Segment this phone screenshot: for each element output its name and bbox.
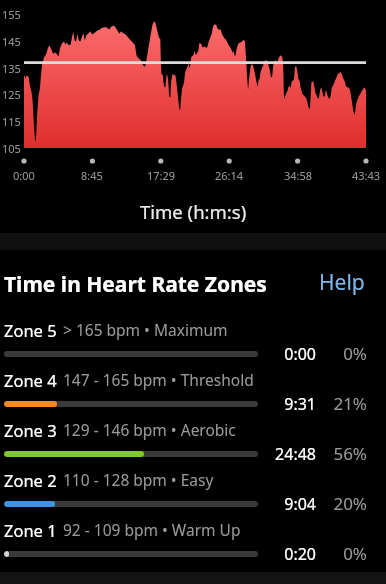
staticText: 92 - 109 bpm • Warm Up <box>63 519 241 540</box>
button[interactable]: Zone 2 <box>0 463 386 515</box>
staticText: Zone 5 <box>4 319 57 341</box>
staticText: 20% <box>316 492 367 515</box>
staticText: 43:43 <box>352 168 381 183</box>
staticText: 145 <box>2 34 21 49</box>
staticText: Time (h:m:s) <box>140 199 247 224</box>
staticText: 125 <box>2 87 21 102</box>
staticText: 0:00 <box>13 168 35 183</box>
staticText: 0% <box>316 542 367 565</box>
button[interactable]: Zone 5 <box>0 313 386 365</box>
staticText: 115 <box>2 114 21 129</box>
button[interactable]: Help <box>303 264 386 305</box>
staticText: 8:45 <box>81 168 103 183</box>
staticText: 17:29 <box>147 168 176 183</box>
button[interactable]: Zone 3 <box>0 413 386 465</box>
staticText: Zone 4 <box>4 369 57 391</box>
staticText: 21% <box>316 392 367 415</box>
staticText: Zone 1 <box>4 519 57 541</box>
staticText: Time in Heart Rate Zones <box>4 270 267 299</box>
staticText: 34:58 <box>284 168 313 183</box>
staticText: 110 - 128 bpm • Easy <box>63 469 214 490</box>
button[interactable]: Zone 4 <box>0 363 386 415</box>
button[interactable]: Zone 1 <box>0 513 386 565</box>
staticText: 0% <box>316 342 367 365</box>
staticText: 105 <box>2 141 21 156</box>
staticText: 24:48 <box>258 443 316 465</box>
staticText: 129 - 146 bpm • Aerobic <box>63 419 236 440</box>
staticText: 135 <box>2 61 21 76</box>
staticText: 147 - 165 bpm • Threshold <box>63 369 254 390</box>
staticText: 0:00 <box>258 343 316 365</box>
staticText: 9:04 <box>258 493 316 515</box>
staticText: 155 <box>2 7 21 22</box>
staticText: 0:20 <box>258 543 316 565</box>
staticText: Zone 3 <box>4 419 57 441</box>
staticText: > 165 bpm • Maximum <box>63 319 228 340</box>
staticText: Zone 2 <box>4 469 57 491</box>
staticText: 56% <box>316 442 367 465</box>
staticText: 26:14 <box>215 168 244 183</box>
staticText: Help <box>319 268 365 297</box>
staticText: 9:31 <box>258 393 316 415</box>
